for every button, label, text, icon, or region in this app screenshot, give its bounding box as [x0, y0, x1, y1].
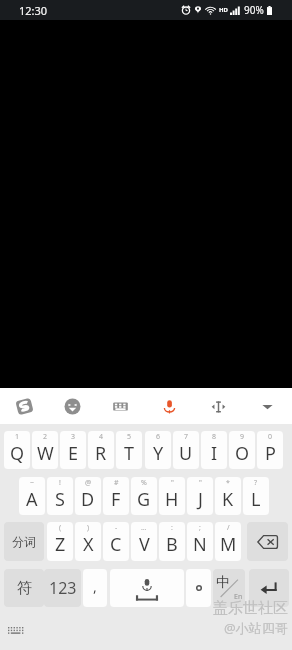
staticText: %: [141, 478, 147, 488]
staticText: 123: [49, 577, 77, 599]
staticText: 1: [15, 432, 20, 442]
button[interactable]: Numbers: [44, 569, 81, 607]
staticText: A: [26, 487, 38, 512]
staticText: W: [37, 441, 54, 466]
staticText: R: [95, 441, 107, 466]
button[interactable]: Chinese / English: [213, 569, 245, 607]
staticText: 8: [212, 432, 217, 442]
button[interactable]: 分词: [4, 522, 44, 561]
staticText: ;: [199, 523, 201, 533]
staticText: (: [59, 523, 62, 533]
button[interactable]: *: [215, 477, 241, 515]
button[interactable]: ": [187, 477, 213, 515]
staticText: En: [234, 592, 243, 602]
button[interactable]: 5: [116, 431, 142, 469]
staticText: *: [226, 478, 230, 488]
staticText: 中: [216, 574, 230, 592]
staticText: 盖乐世社区: [213, 599, 288, 618]
button[interactable]: :: [159, 522, 185, 561]
staticText: #: [114, 478, 119, 488]
button[interactable]: Move cursor: [194, 388, 243, 424]
staticText: G: [137, 487, 151, 512]
staticText: H: [165, 487, 179, 512]
staticText: Q: [10, 441, 25, 466]
button[interactable]: -: [103, 522, 129, 561]
other: Switch input method: [8, 627, 24, 636]
staticText: O: [235, 441, 250, 466]
staticText: 2: [43, 432, 48, 442]
button[interactable]: Sogou input method: [0, 388, 48, 424]
button[interactable]: 1: [4, 431, 30, 469]
button[interactable]: Backspace: [247, 522, 288, 561]
button[interactable]: %: [131, 477, 157, 515]
button[interactable]: Keyboard layout: [96, 388, 145, 424]
staticText: :: [171, 523, 173, 533]
staticText: ": [171, 478, 174, 488]
button[interactable]: Period: [186, 569, 211, 607]
staticText: V: [139, 532, 150, 557]
button[interactable]: ;: [187, 522, 213, 561]
staticText: U: [179, 441, 193, 466]
staticText: C: [110, 532, 122, 557]
staticText: 5: [127, 432, 132, 442]
staticText: 4: [99, 432, 104, 442]
button[interactable]: ): [75, 522, 101, 561]
staticText: 6: [156, 432, 161, 442]
staticText: P: [265, 441, 276, 466]
button[interactable]: 0: [257, 431, 283, 469]
button[interactable]: #: [103, 477, 129, 515]
staticText: Z: [55, 532, 66, 557]
button[interactable]: Symbols: [4, 569, 44, 607]
button[interactable]: …: [131, 522, 157, 561]
staticText: ": [199, 478, 202, 488]
button[interactable]: 3: [60, 431, 86, 469]
staticText: 12:30: [19, 3, 48, 18]
button[interactable]: Voice input: [145, 388, 194, 424]
staticText: X: [83, 532, 94, 557]
button[interactable]: @: [75, 477, 101, 515]
button[interactable]: 6: [145, 431, 171, 469]
staticText: L: [251, 487, 261, 512]
button[interactable]: Enter: [249, 569, 289, 607]
button[interactable]: !: [47, 477, 73, 515]
staticText: J: [198, 487, 203, 512]
staticText: 分词: [12, 534, 36, 549]
staticText: !: [59, 478, 61, 488]
staticText: …: [141, 523, 147, 533]
button[interactable]: ?: [243, 477, 269, 515]
button[interactable]: 4: [88, 431, 114, 469]
staticText: ): [87, 523, 90, 533]
staticText: @小站四哥: [224, 619, 288, 637]
button[interactable]: Space: [110, 569, 184, 607]
staticText: N: [193, 532, 207, 557]
staticText: 7: [184, 432, 189, 442]
staticText: -: [115, 523, 118, 533]
button[interactable]: Comma: [83, 569, 107, 607]
staticText: 3: [71, 432, 76, 442]
staticText: B: [166, 532, 178, 557]
staticText: 9: [240, 432, 245, 442]
staticText: T: [124, 441, 135, 466]
staticText: 0: [268, 432, 273, 442]
button[interactable]: 2: [32, 431, 58, 469]
staticText: @: [85, 478, 92, 488]
button[interactable]: 8: [201, 431, 227, 469]
staticText: E: [68, 441, 79, 466]
button[interactable]: 7: [173, 431, 199, 469]
staticText: ,: [93, 577, 97, 596]
staticText: 90%: [244, 3, 264, 17]
button[interactable]: ": [159, 477, 185, 515]
button[interactable]: 9: [229, 431, 255, 469]
staticText: I: [211, 441, 218, 466]
button[interactable]: Hide keyboard: [243, 388, 292, 424]
staticText: M: [220, 532, 237, 557]
staticText: HD: [219, 6, 228, 14]
staticText: ~: [30, 478, 35, 488]
staticText: F: [111, 487, 121, 512]
staticText: ?: [254, 478, 258, 488]
button[interactable]: /: [215, 522, 241, 561]
staticText: S: [55, 487, 65, 512]
button[interactable]: ~: [19, 477, 45, 515]
button[interactable]: Emoji: [48, 388, 96, 424]
button[interactable]: (: [47, 522, 73, 561]
